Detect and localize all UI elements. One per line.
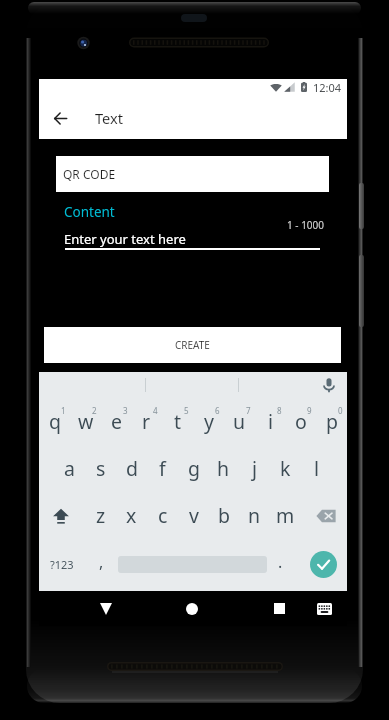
staticText: g <box>188 455 200 482</box>
staticText: k <box>280 455 291 482</box>
button[interactable]: f <box>147 445 178 492</box>
button[interactable]: g <box>178 445 209 492</box>
staticText: CREATE <box>175 338 210 352</box>
button[interactable]: Done <box>305 539 341 589</box>
button[interactable]: Voice input <box>320 376 338 394</box>
staticText: ?123 <box>50 557 74 572</box>
staticText: Enter your text here <box>64 230 186 248</box>
staticText: t <box>174 408 182 435</box>
button[interactable]: x <box>116 492 147 539</box>
button[interactable]: w <box>70 398 101 445</box>
button[interactable]: j <box>239 445 270 492</box>
staticText: . <box>278 551 283 573</box>
staticText: x <box>126 502 137 529</box>
staticText: 2 <box>92 405 97 416</box>
button[interactable]: b <box>208 492 239 539</box>
button[interactable]: p <box>316 398 347 445</box>
staticText: 0 <box>338 405 343 416</box>
button[interactable]: e <box>101 398 132 445</box>
staticText: 9 <box>307 405 312 416</box>
staticText: s <box>96 455 106 482</box>
staticText: d <box>126 455 138 482</box>
button[interactable]: r <box>131 398 162 445</box>
staticText: l <box>314 455 320 482</box>
staticText: o <box>295 408 307 435</box>
button[interactable]: CREATE <box>44 327 341 363</box>
button[interactable] <box>304 492 347 539</box>
button[interactable]: . <box>267 539 293 589</box>
staticText: z <box>96 502 106 529</box>
button[interactable]: ?123 <box>39 539 85 589</box>
button[interactable]: Space <box>118 539 267 589</box>
staticText: u <box>233 408 246 435</box>
button[interactable]: a <box>54 445 85 492</box>
staticText: , <box>99 551 104 573</box>
button[interactable]: QR CODE <box>56 156 329 192</box>
staticText: q <box>49 408 61 435</box>
staticText: j <box>252 455 258 482</box>
button[interactable]: c <box>147 492 178 539</box>
staticText: 12:04 <box>313 80 342 95</box>
button[interactable]: k <box>270 445 301 492</box>
staticText: 8 <box>277 405 282 416</box>
staticText: 3 <box>123 405 128 416</box>
staticText: f <box>159 455 166 482</box>
button[interactable]: q <box>39 398 70 445</box>
button[interactable]: s <box>85 445 116 492</box>
staticText: 1 <box>61 405 66 416</box>
button[interactable]: i <box>255 398 286 445</box>
staticText: m <box>276 502 295 529</box>
button[interactable]: o <box>285 398 316 445</box>
button[interactable]: Back <box>93 591 119 626</box>
button[interactable]: m <box>270 492 301 539</box>
button[interactable]: l <box>301 445 332 492</box>
staticText: 7 <box>246 405 251 416</box>
staticText: 1 - 1000 <box>287 218 325 232</box>
staticText: n <box>248 502 261 529</box>
button[interactable]: v <box>178 492 209 539</box>
staticText: 4 <box>153 405 158 416</box>
button[interactable]: d <box>116 445 147 492</box>
button[interactable]: z <box>85 492 116 539</box>
button[interactable]: Home <box>179 591 205 626</box>
button[interactable]: n <box>239 492 270 539</box>
button[interactable]: u <box>224 398 255 445</box>
staticText: QR CODE <box>63 166 116 182</box>
staticText: a <box>64 455 75 482</box>
button[interactable]: t <box>162 398 193 445</box>
button[interactable]: Switch keyboard <box>311 591 337 626</box>
staticText: y <box>204 408 214 435</box>
button[interactable] <box>39 492 82 539</box>
button[interactable]: Recents <box>266 591 292 626</box>
staticText: p <box>326 408 338 435</box>
staticText: Content <box>64 203 115 221</box>
staticText: 6 <box>215 405 220 416</box>
staticText: b <box>218 502 230 529</box>
button[interactable]: Back <box>47 97 74 139</box>
staticText: h <box>217 455 230 482</box>
button[interactable]: y <box>193 398 224 445</box>
button[interactable]: , <box>86 539 116 589</box>
staticText: e <box>111 408 122 435</box>
staticText: w <box>78 408 94 435</box>
staticText: v <box>189 502 199 529</box>
staticText: i <box>268 408 274 435</box>
staticText: c <box>158 502 168 529</box>
staticText: Text <box>95 108 124 128</box>
button[interactable]: h <box>208 445 239 492</box>
staticText: 5 <box>184 405 189 416</box>
staticText: r <box>142 408 151 435</box>
